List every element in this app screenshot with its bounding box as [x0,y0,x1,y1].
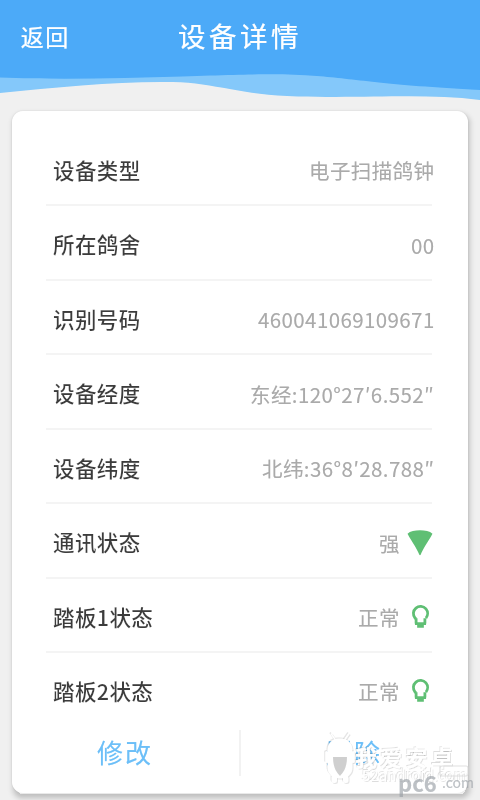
staticText: 设备纬度 [53,452,141,483]
staticText: 460041069109671 [258,304,435,334]
staticText: 设备经度 [53,377,141,408]
staticText: 删除 [326,733,383,771]
button[interactable]: 返回 [6,11,83,64]
staticText: 东经:120°27′6.552″ [250,379,435,409]
button[interactable]: 设备纬度 [12,430,468,504]
staticText: 修改 [97,733,154,771]
staticText: 正常 [358,602,400,632]
button[interactable]: 通讯状态 [12,504,468,579]
button[interactable]: 所在鸽舍 [12,206,468,281]
staticText: 强 [379,528,400,558]
staticText: 所在鸽舍 [53,228,141,259]
button[interactable]: 识别号码 [12,281,468,355]
button[interactable]: 设备类型 [12,132,468,206]
button[interactable]: 踏板2状态 [12,653,468,727]
staticText: 通讯状态 [53,526,141,557]
staticText: 踏板2状态 [53,675,154,706]
button[interactable]: 踏板1状态 [12,579,468,653]
staticText: 识别号码 [53,303,141,334]
staticText: 52android.com [362,764,468,786]
staticText: 返回 [20,19,69,52]
button[interactable]: 删除 [241,727,468,780]
staticText: 正常 [358,676,400,706]
staticText: 我爱安卓 [355,740,457,772]
staticText: 我爱安卓 [356,741,458,773]
staticText: 北纬:36°8′28.788″ [262,453,435,483]
staticText: 52android.com [361,763,467,785]
staticText: 设备类型 [53,154,141,185]
button[interactable]: 修改 [12,727,239,780]
staticText: 52android.com [363,765,469,787]
staticText: pc6 [398,766,437,798]
staticText: 我爱安卓 [354,739,456,771]
staticText: 电子扫描鸽钟 [309,155,435,185]
staticText: 踏板1状态 [53,601,154,632]
staticText: .com [442,772,474,792]
staticText: 设备详情 [178,15,302,55]
button[interactable]: 设备经度 [12,355,468,430]
staticText: 00 [411,230,435,260]
